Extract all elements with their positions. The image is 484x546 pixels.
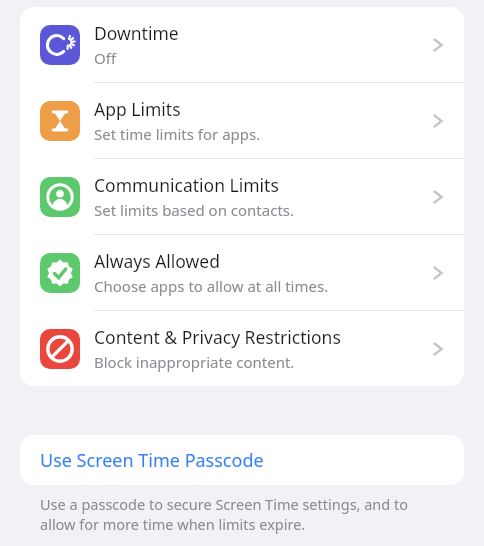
staticText: Off: [94, 48, 117, 68]
other: Open Downtime: [432, 35, 444, 55]
staticText: Always Allowed: [94, 249, 220, 273]
button[interactable]: App Limits: [20, 83, 464, 159]
button[interactable]: Downtime: [20, 7, 464, 83]
button[interactable]: Always Allowed: [20, 235, 464, 311]
staticText: Content & Privacy Restrictions: [94, 325, 341, 349]
staticText: Set time limits for apps.: [94, 124, 261, 144]
other: Open App Limits: [432, 111, 444, 131]
staticText: Block inappropriate content.: [94, 352, 295, 372]
other: Open Communication Limits: [432, 187, 444, 207]
staticText: Communication Limits: [94, 173, 279, 197]
staticText: Downtime: [94, 21, 179, 45]
button[interactable]: Communication Limits: [20, 159, 464, 235]
button[interactable]: Use Screen Time Passcode: [20, 435, 464, 485]
staticText: Choose apps to allow at all times.: [94, 276, 329, 296]
other: Open Always Allowed: [432, 263, 444, 283]
staticText: App Limits: [94, 97, 181, 121]
other: Open Content & Privacy Restrictions: [432, 339, 444, 359]
staticText: Set limits based on contacts.: [94, 200, 294, 220]
staticText: Use Screen Time Passcode: [40, 448, 264, 473]
button[interactable]: Content & Privacy Restrictions: [20, 311, 464, 386]
staticText: Use a passcode to secure Screen Time set…: [40, 494, 444, 534]
